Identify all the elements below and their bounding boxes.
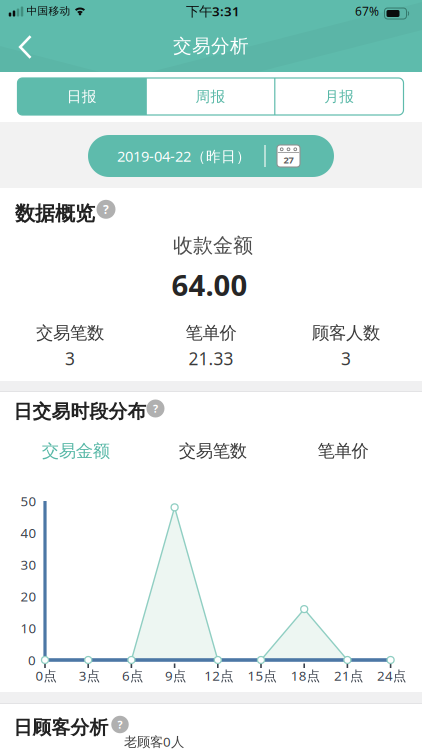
staticText: 18点 <box>291 667 320 684</box>
staticText: 日顾客分析 <box>13 716 108 739</box>
button[interactable]: 数据概览说明 <box>96 200 115 219</box>
staticText: 交易笔数 <box>179 440 247 462</box>
staticText: 9点 <box>165 667 186 684</box>
staticText: 0点 <box>35 667 56 684</box>
staticText: ? <box>117 717 122 732</box>
staticText: 50 <box>20 492 36 510</box>
staticText: 下午3:31 <box>186 2 240 20</box>
button[interactable]: 2019-04-22（昨日） <box>88 135 334 177</box>
staticText: 3点 <box>79 667 100 684</box>
button[interactable]: 交易笔数 <box>173 434 253 468</box>
staticText: 月报 <box>324 87 354 105</box>
button[interactable]: 周报 <box>146 78 275 115</box>
staticText: 收款金额 <box>173 233 253 258</box>
staticText: 交易笔数 <box>36 322 104 344</box>
staticText: 交易分析 <box>173 34 249 57</box>
button[interactable]: 笔单价 <box>311 434 374 468</box>
staticText: 中国移动 <box>26 4 70 17</box>
staticText: 数据概览 <box>15 201 95 226</box>
staticText: 笔单价 <box>317 440 368 462</box>
button[interactable]: 日报 <box>17 78 146 115</box>
staticText: ? <box>153 401 158 416</box>
staticText: 0 <box>28 651 36 669</box>
staticText: 15点 <box>247 667 276 684</box>
staticText: 6点 <box>122 667 143 684</box>
staticText: 老顾客0人 <box>124 733 184 750</box>
button[interactable]: 返回 <box>1 25 46 69</box>
staticText: 21.33 <box>188 347 233 370</box>
staticText: 顾客人数 <box>312 322 380 344</box>
staticText: 40 <box>20 524 36 542</box>
staticText: ? <box>103 201 109 217</box>
staticText: 交易金额 <box>42 440 110 462</box>
staticText: 20 <box>20 587 36 605</box>
staticText: 21点 <box>334 667 363 684</box>
staticText: 周报 <box>195 87 225 105</box>
staticText: 64.00 <box>171 265 247 304</box>
staticText: 3 <box>65 347 75 370</box>
staticText: 12点 <box>204 667 233 684</box>
button[interactable]: 日顾客分析说明 <box>111 716 129 733</box>
staticText: 日交易时段分布 <box>13 400 146 423</box>
staticText: 3 <box>341 347 351 370</box>
staticText: 24点 <box>377 667 406 684</box>
staticText: 10 <box>20 619 36 637</box>
button[interactable]: 交易金额 <box>36 434 116 468</box>
staticText: 日报 <box>67 87 97 105</box>
staticText: 27 <box>283 154 293 166</box>
button[interactable]: 月报 <box>275 78 403 115</box>
staticText: 30 <box>20 556 36 573</box>
button[interactable]: 日交易时段分布说明 <box>146 399 164 417</box>
staticText: 67% <box>355 3 379 19</box>
staticText: 笔单价 <box>185 322 236 344</box>
staticText: 2019-04-22（昨日） <box>117 146 251 166</box>
